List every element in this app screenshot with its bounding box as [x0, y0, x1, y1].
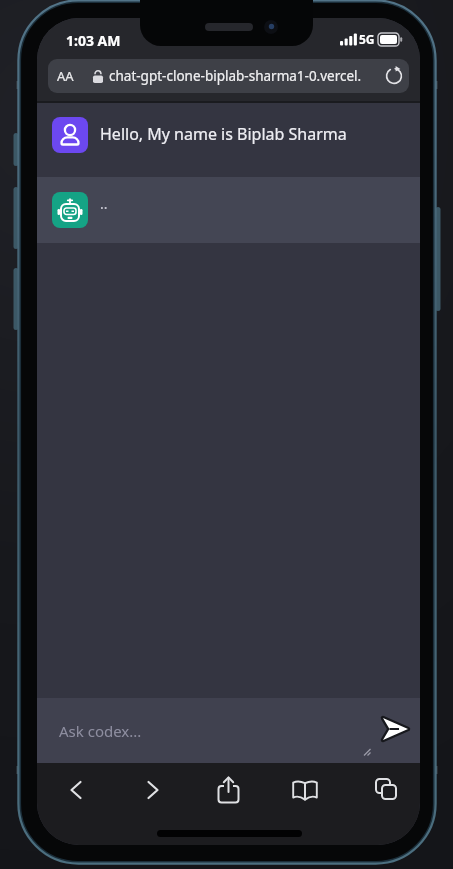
- staticText: AA: [57, 67, 74, 85]
- button[interactable]: Ask codex...: [37, 698, 420, 763]
- staticText: 1:03 AM: [66, 31, 121, 50]
- button[interactable]: [382, 716, 410, 744]
- staticText: 5G: [359, 31, 375, 47]
- button[interactable]: [375, 778, 397, 800]
- button[interactable]: ..: [37, 177, 420, 243]
- button[interactable]: [384, 66, 404, 86]
- button[interactable]: AA: [48, 59, 409, 93]
- staticText: Hello, My name is Biplab Sharma: [100, 123, 347, 145]
- button[interactable]: [292, 780, 318, 801]
- button[interactable]: [146, 780, 160, 800]
- staticText: chat-gpt-clone-biplab-sharma1-0.vercel.: [109, 67, 362, 85]
- staticText: ..: [100, 194, 108, 213]
- button[interactable]: [69, 780, 83, 800]
- staticText: Ask codex...: [59, 721, 142, 741]
- button[interactable]: Hello, My name is Biplab Sharma: [37, 103, 420, 177]
- button[interactable]: [217, 776, 240, 804]
